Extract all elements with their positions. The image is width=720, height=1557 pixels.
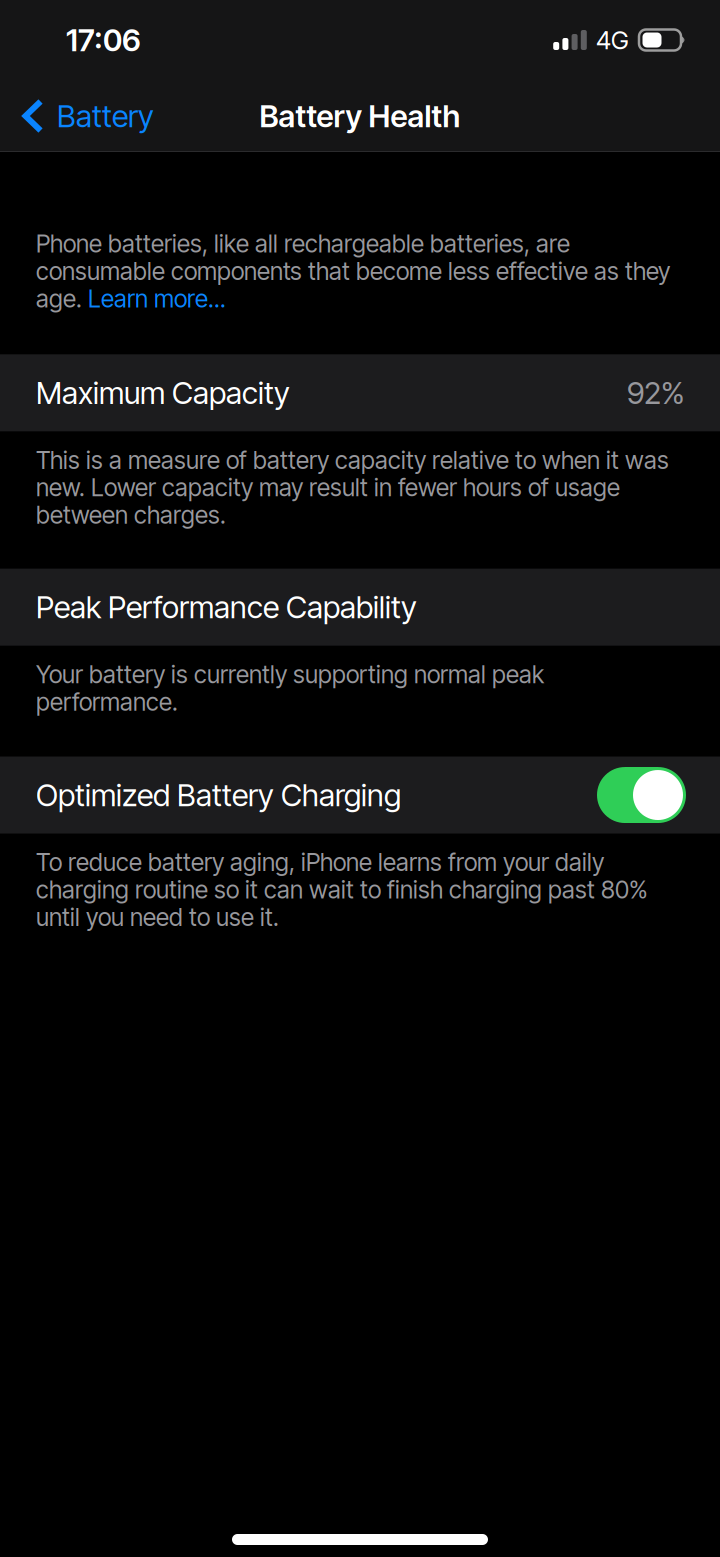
staticText: Peak Performance Capability xyxy=(36,589,417,626)
button[interactable]: Optimized Battery Charging xyxy=(597,767,686,823)
staticText: This is a measure of battery capacity re… xyxy=(36,445,669,530)
staticText: 92% xyxy=(627,374,684,411)
staticText: Battery xyxy=(57,97,154,134)
staticText: Battery Health xyxy=(259,97,460,134)
button[interactable]: Peak Performance Capability xyxy=(0,569,720,646)
staticText: 17:06 xyxy=(66,21,141,58)
staticText: Your battery is currently supporting nor… xyxy=(36,660,544,716)
staticText: Optimized Battery Charging xyxy=(36,776,401,814)
button[interactable]: Battery xyxy=(0,82,170,150)
staticText: Phone batteries, like all rechargeable b… xyxy=(36,229,670,313)
staticText: 4G xyxy=(596,25,629,55)
staticText: Maximum Capacity xyxy=(36,374,290,411)
staticText: To reduce battery aging, iPhone learns f… xyxy=(36,847,648,932)
